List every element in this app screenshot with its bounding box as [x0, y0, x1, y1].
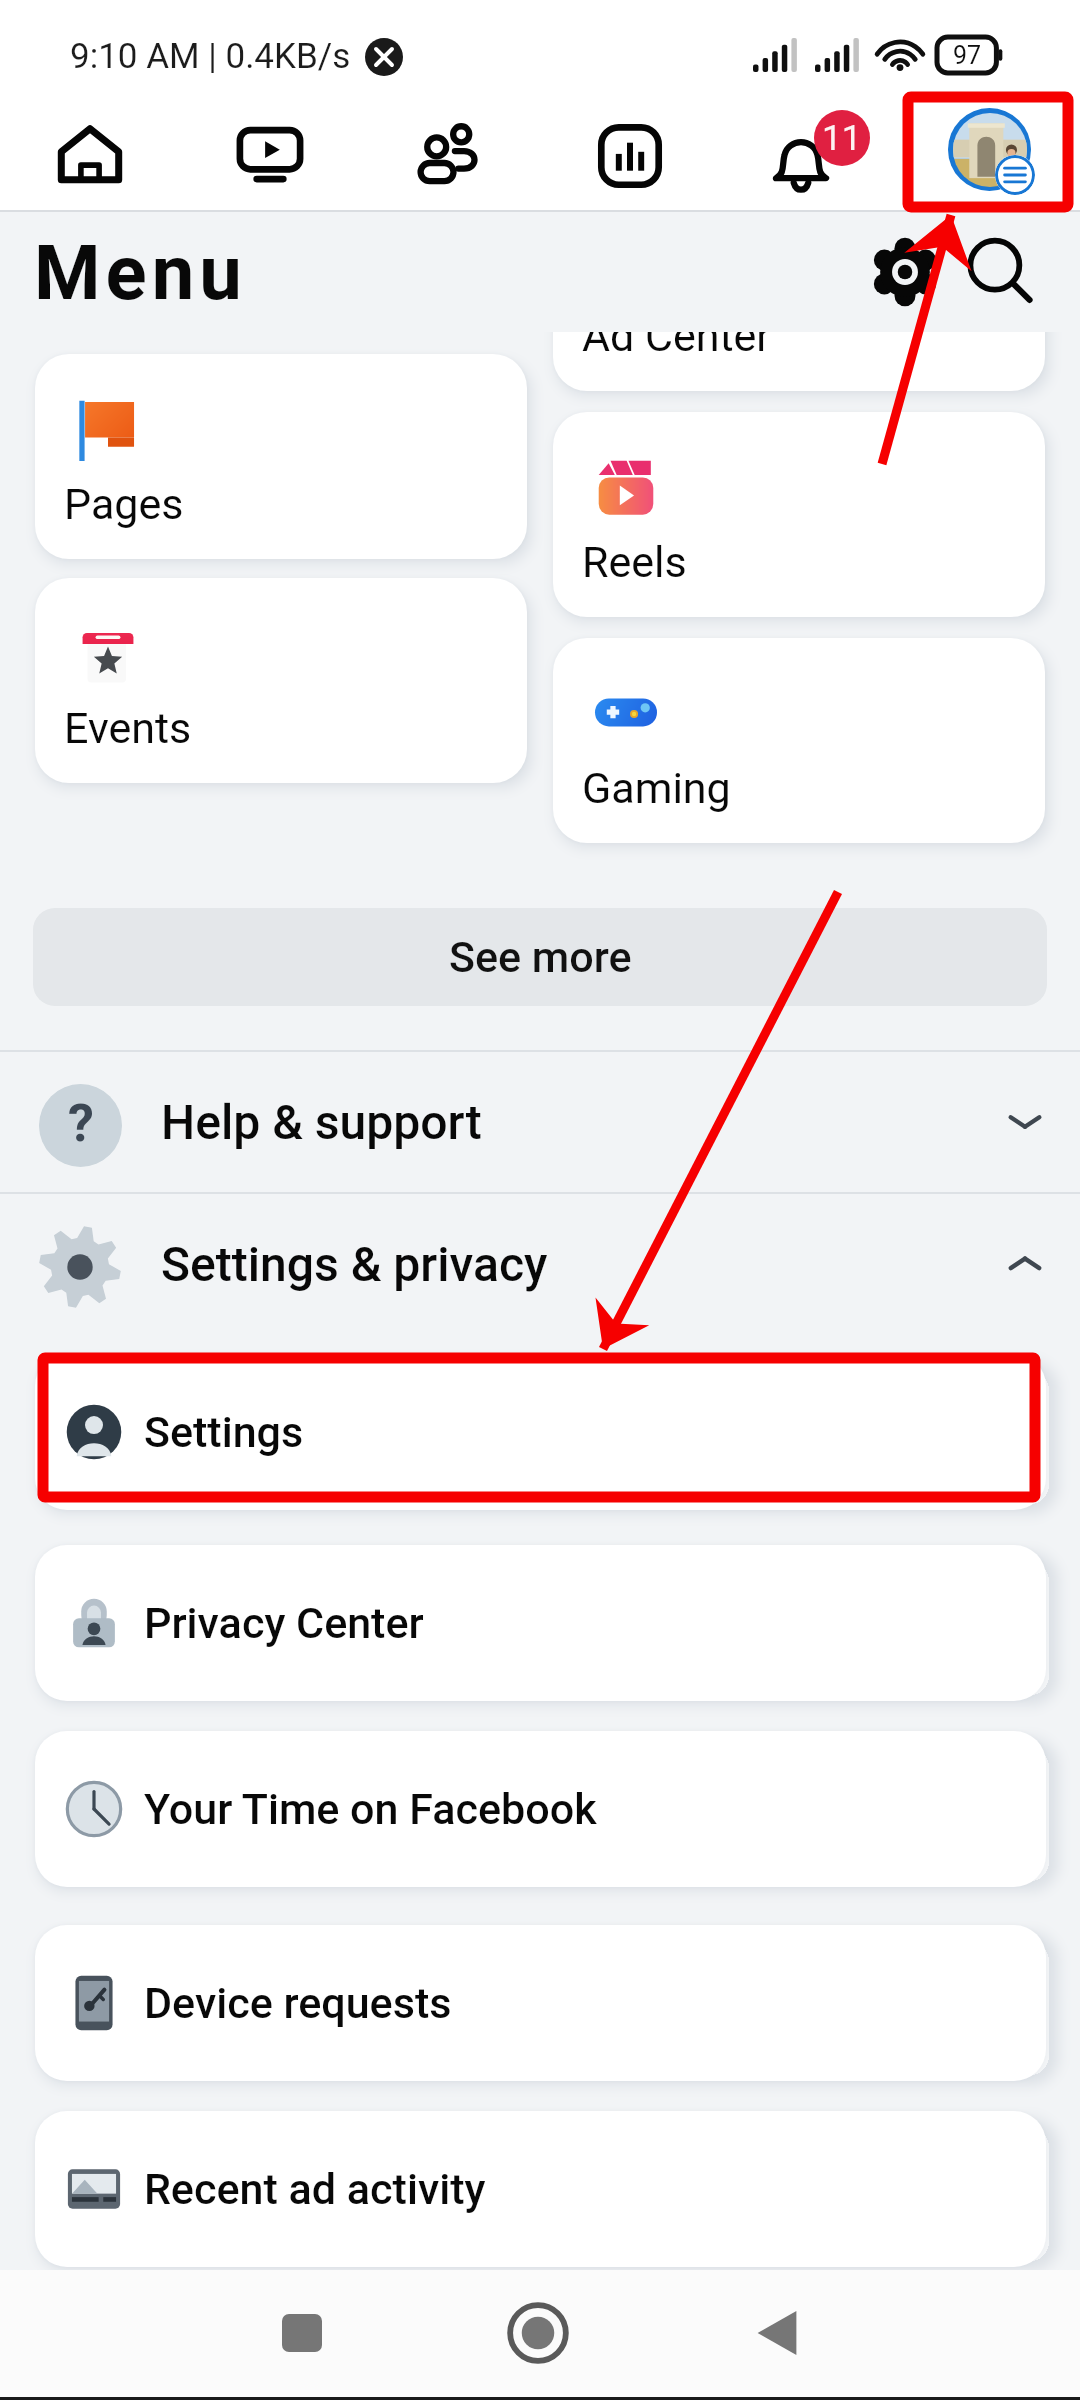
staticText: Help & support	[161, 1094, 482, 1150]
staticText: ?	[68, 1093, 94, 1154]
button[interactable]: Home	[488, 2283, 588, 2383]
staticText: Menu	[34, 228, 247, 317]
button[interactable]: Search	[958, 229, 1044, 315]
button[interactable]: Events	[35, 578, 527, 783]
staticText: Settings & privacy	[161, 1236, 548, 1292]
button[interactable]: Friends	[360, 100, 540, 212]
staticText: Gaming	[582, 763, 731, 813]
button[interactable]: Device requests	[35, 1925, 1046, 2081]
staticText: Ad Center	[582, 332, 771, 361]
staticText: See more	[449, 932, 632, 982]
button[interactable]: Settings	[862, 229, 948, 315]
button[interactable]: ?	[0, 1052, 1080, 1192]
button[interactable]: Pages	[35, 354, 527, 559]
button[interactable]: See more	[33, 908, 1047, 1006]
staticText: Privacy Center	[144, 1598, 424, 1648]
staticText: Reels	[582, 537, 687, 587]
button[interactable]: Menu	[900, 100, 1080, 212]
button[interactable]: Notifications	[720, 100, 900, 212]
staticText: Pages	[64, 479, 184, 529]
button[interactable]: Settings	[35, 1354, 1046, 1510]
button[interactable]: Marketplace	[540, 100, 720, 212]
button[interactable]: Settings & privacy	[0, 1194, 1080, 1334]
staticText: Settings	[144, 1407, 304, 1457]
staticText: Events	[64, 703, 192, 753]
staticText: Device requests	[144, 1978, 452, 2028]
button[interactable]: Recents	[252, 2283, 352, 2383]
button[interactable]: Your Time on Facebook	[35, 1731, 1046, 1887]
staticText: Recent ad activity	[144, 2164, 486, 2214]
staticText: Your Time on Facebook	[144, 1784, 597, 1834]
button[interactable]: Gaming	[553, 638, 1045, 843]
button[interactable]: Recent ad activity	[35, 2111, 1046, 2267]
button[interactable]: Video	[180, 100, 360, 212]
button[interactable]: Home	[0, 100, 180, 212]
staticText: 11	[822, 118, 862, 159]
button[interactable]: Reels	[553, 412, 1045, 617]
button[interactable]: Back	[727, 2283, 827, 2383]
staticText: 9:10 AM | 0.4KB/s	[70, 36, 351, 77]
staticText: 97	[953, 41, 982, 70]
button[interactable]: Privacy Center	[35, 1545, 1046, 1701]
button[interactable]: Ad Center	[553, 332, 1045, 391]
